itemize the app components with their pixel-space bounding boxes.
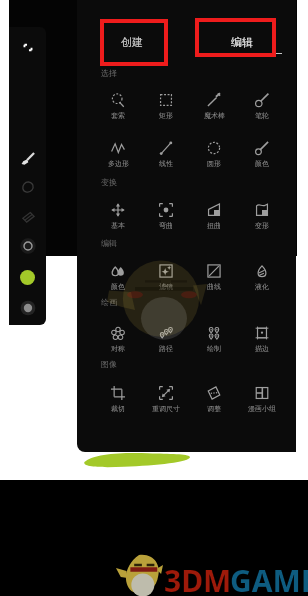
staticText: 弯曲 <box>159 221 173 230</box>
button[interactable]: 笔轮 <box>238 87 286 127</box>
staticText: 曲线 <box>207 282 221 291</box>
staticText: 选择 <box>101 68 117 78</box>
button[interactable]: Layers <box>13 232 42 260</box>
button[interactable]: 调整 <box>190 380 238 420</box>
button[interactable]: 对称 <box>94 320 142 360</box>
staticText: 变形 <box>255 221 269 230</box>
button[interactable]: 液化 <box>238 258 286 298</box>
staticText: 矩形 <box>159 111 173 120</box>
button[interactable]: Transform <box>13 34 42 62</box>
staticText: 颜色 <box>111 282 125 291</box>
staticText: 对称 <box>111 344 125 353</box>
staticText: 绘制 <box>207 344 221 353</box>
staticText: 图像 <box>101 359 117 369</box>
button[interactable]: 重调尺寸 <box>142 380 190 420</box>
staticText: 漫画小组 <box>248 404 276 413</box>
button[interactable]: 套索 <box>94 87 142 127</box>
button[interactable]: 创建 <box>77 8 187 56</box>
button[interactable]: 描边 <box>238 320 286 360</box>
button[interactable]: 弯曲 <box>142 197 190 237</box>
staticText: 魔术棒 <box>204 111 225 120</box>
staticText: 调整 <box>207 404 221 413</box>
staticText: 裁切 <box>111 404 125 413</box>
staticText: 套索 <box>111 111 125 120</box>
staticText: 滤镜 <box>159 282 173 291</box>
button[interactable]: 多边形 <box>94 135 142 175</box>
staticText: 笔轮 <box>255 111 269 120</box>
staticText: 绘画 <box>101 297 117 307</box>
staticText: 路径 <box>159 344 173 353</box>
button[interactable]: 漫画小组 <box>238 380 286 420</box>
button[interactable]: 魔术棒 <box>190 87 238 127</box>
button[interactable]: 滤镜 <box>142 258 190 298</box>
staticText: 基本 <box>111 221 125 230</box>
button[interactable]: 路径 <box>142 320 190 360</box>
staticText: 液化 <box>255 282 269 291</box>
staticText: 编辑 <box>101 238 117 248</box>
staticText: 重调尺寸 <box>152 404 180 413</box>
staticText: 圆形 <box>207 159 221 168</box>
button[interactable]: Eraser <box>13 203 42 231</box>
button[interactable]: 圆形 <box>190 135 238 175</box>
staticText: 扭曲 <box>207 221 221 230</box>
button[interactable]: 矩形 <box>142 87 190 127</box>
button[interactable]: Colour <box>20 270 35 285</box>
staticText: 线性 <box>159 159 173 168</box>
staticText: 3DM <box>164 560 232 596</box>
button[interactable]: Smudge <box>13 173 42 201</box>
button[interactable]: 曲线 <box>190 258 238 298</box>
button[interactable]: 编辑 <box>187 8 296 56</box>
staticText: 创建 <box>121 35 143 49</box>
button[interactable]: 裁切 <box>94 380 142 420</box>
staticText: 变换 <box>101 177 117 187</box>
button[interactable]: Brush <box>13 145 42 173</box>
staticText: 颜色 <box>255 159 269 168</box>
button[interactable]: 基本 <box>94 197 142 237</box>
button[interactable]: 绘制 <box>190 320 238 360</box>
button[interactable]: 颜色 <box>238 135 286 175</box>
button[interactable]: 扭曲 <box>190 197 238 237</box>
staticText: 多边形 <box>108 159 129 168</box>
staticText: 编辑 <box>231 35 253 49</box>
staticText: 描边 <box>255 344 269 353</box>
button[interactable]: 变形 <box>238 197 286 237</box>
button[interactable]: Palette <box>13 294 42 322</box>
button[interactable]: 线性 <box>142 135 190 175</box>
button[interactable]: 颜色 <box>94 258 142 298</box>
staticText: GAME <box>230 560 308 596</box>
